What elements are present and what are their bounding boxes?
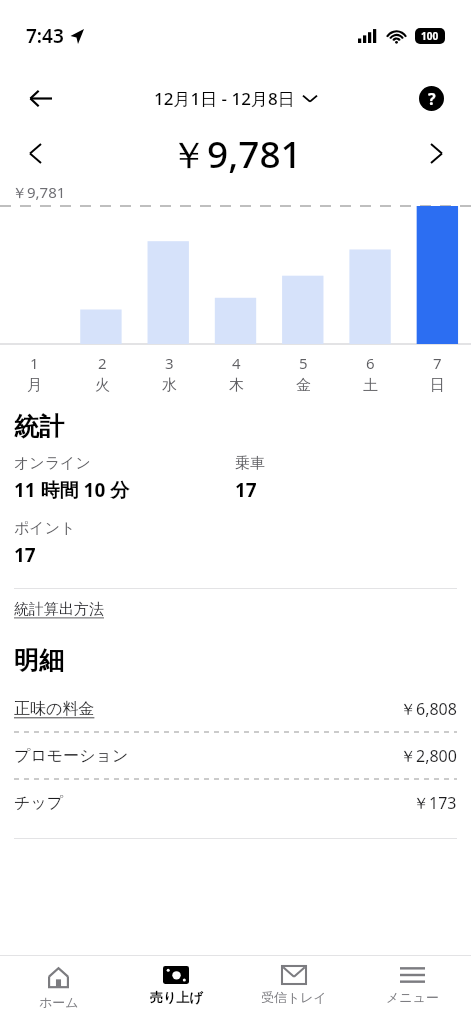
staticText: 1 (30, 353, 39, 373)
staticText: 4 (232, 353, 241, 373)
button[interactable]: メニュー (353, 956, 471, 1005)
button[interactable]: 12月1日 - 12月8日 (154, 87, 317, 110)
staticText: 土 (363, 376, 378, 395)
staticText: 明細 (14, 645, 64, 676)
staticText: 2 (98, 353, 107, 373)
staticText: 金 (296, 376, 311, 395)
staticText: ￥6,808 (400, 698, 457, 720)
staticText: 乗車 (235, 454, 265, 473)
staticText: 月 (27, 376, 42, 395)
staticText: 6 (366, 353, 375, 373)
staticText: 17 (14, 542, 36, 568)
button[interactable]: 売り上げ (117, 956, 235, 1005)
staticText: 7:43 (26, 23, 64, 49)
staticText: 12月1日 - 12月8日 (154, 87, 295, 110)
staticText: 受信トレイ (261, 989, 327, 1005)
button[interactable]: Back (18, 76, 62, 120)
staticText: 水 (162, 376, 177, 395)
staticText: 17 (235, 477, 257, 503)
button[interactable]: チップ (14, 780, 457, 826)
staticText: ? (428, 88, 436, 110)
staticText: 11 時間 10 分 (14, 477, 130, 503)
staticText: ポイント (14, 519, 76, 538)
button[interactable]: 受信トレイ (235, 956, 353, 1005)
button[interactable]: 正味の料金 (14, 686, 457, 732)
staticText: ￥9,781 (170, 128, 302, 179)
button[interactable]: ホーム (0, 956, 117, 1010)
staticText: メニュー (386, 989, 439, 1005)
staticText: 100 (421, 29, 439, 43)
staticText: ￥9,781 (12, 182, 66, 202)
staticText: 統計 (14, 411, 64, 442)
staticText: 火 (95, 376, 110, 395)
staticText: ￥2,800 (400, 745, 457, 767)
button[interactable]: プロモーション (14, 733, 457, 779)
staticText: ホーム (39, 994, 79, 1010)
button[interactable]: Previous week (14, 132, 56, 174)
staticText: 正味の料金 (14, 699, 95, 719)
staticText: 5 (299, 353, 308, 373)
staticText: オンライン (14, 454, 91, 473)
button[interactable]: Help (409, 76, 453, 120)
staticText: 統計算出方法 (14, 600, 104, 619)
staticText: プロモーション (14, 746, 129, 766)
staticText: チップ (14, 793, 64, 813)
button[interactable]: Next week (415, 132, 457, 174)
staticText: 日 (430, 376, 445, 395)
button[interactable]: 統計算出方法 (14, 600, 104, 619)
staticText: 木 (229, 376, 244, 395)
staticText: 3 (165, 353, 174, 373)
staticText: 7 (433, 353, 442, 373)
staticText: 売り上げ (150, 989, 203, 1005)
staticText: ￥173 (413, 792, 457, 814)
